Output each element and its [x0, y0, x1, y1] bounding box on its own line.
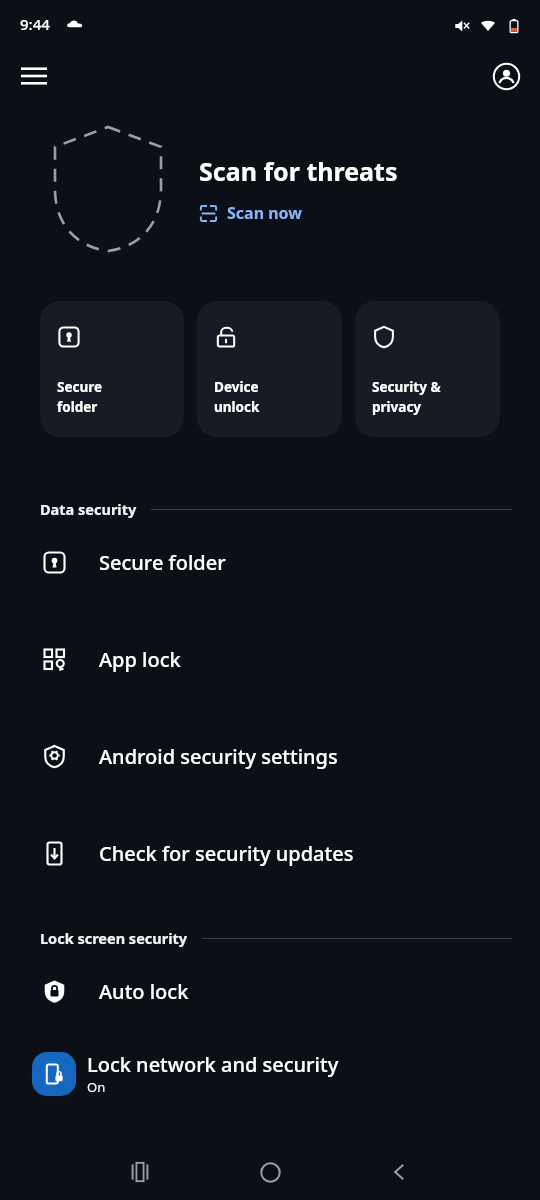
- staticText: Secure folder: [99, 549, 226, 576]
- staticText: Auto lock: [99, 978, 189, 1005]
- button[interactable]: Device unlock: [197, 301, 342, 437]
- staticText: Lock screen security: [40, 928, 188, 948]
- button[interactable]: Back: [390, 1162, 410, 1182]
- staticText: 9:44: [20, 14, 50, 34]
- button[interactable]: Check for security updates: [0, 840, 540, 867]
- button[interactable]: Scan now: [199, 202, 302, 224]
- button[interactable]: Secure folder: [0, 549, 540, 576]
- button[interactable]: Recents: [130, 1162, 150, 1182]
- staticText: Device unlock: [214, 378, 260, 416]
- staticText: Secure folder: [57, 378, 103, 416]
- staticText: Data security: [40, 499, 137, 519]
- button[interactable]: Auto lock: [0, 978, 540, 1005]
- staticText: Security & privacy: [372, 378, 441, 416]
- staticText: Android security settings: [99, 743, 338, 770]
- staticText: Scan now: [227, 202, 302, 224]
- staticText: Lock network and security: [87, 1051, 339, 1078]
- staticText: App lock: [99, 646, 181, 673]
- button[interactable]: App lock: [0, 646, 540, 673]
- button[interactable]: Lock network and security: [0, 1051, 540, 1096]
- staticText: Check for security updates: [99, 840, 354, 867]
- button[interactable]: Menu: [12, 54, 56, 98]
- button[interactable]: Secure folder: [40, 301, 184, 437]
- button[interactable]: Android security settings: [0, 743, 540, 770]
- button[interactable]: Account: [484, 54, 528, 98]
- staticText: On: [87, 1078, 106, 1096]
- button[interactable]: Security & privacy: [355, 301, 500, 437]
- button[interactable]: Home: [260, 1162, 281, 1183]
- staticText: Scan for threats: [199, 154, 398, 188]
